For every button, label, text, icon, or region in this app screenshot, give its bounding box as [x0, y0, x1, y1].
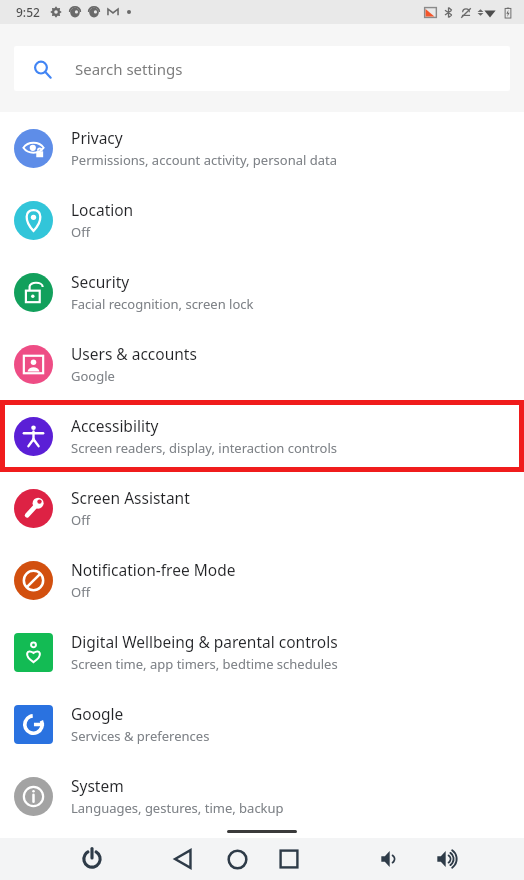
staticText: Off	[71, 511, 91, 529]
button[interactable]: Back	[163, 838, 203, 880]
staticText: Privacy	[71, 127, 123, 148]
button[interactable]: Google	[0, 688, 524, 760]
staticText: Off	[71, 223, 91, 241]
staticText: Security	[71, 271, 130, 292]
staticText: Screen Assistant	[71, 487, 190, 508]
button[interactable]: Home	[217, 838, 257, 880]
button[interactable]: Recent apps	[269, 838, 309, 880]
staticText: Facial recognition, screen lock	[71, 295, 254, 313]
button[interactable]: Search settings	[14, 46, 510, 91]
button[interactable]: Screen Assistant	[0, 472, 524, 544]
staticText: Notification-free Mode	[71, 559, 236, 580]
staticText: Screen readers, display, interaction con…	[71, 439, 338, 457]
button[interactable]: Notification-free Mode	[0, 544, 524, 616]
staticText: Search settings	[75, 59, 183, 79]
staticText: System	[71, 775, 124, 796]
button[interactable]: Security	[0, 256, 524, 328]
staticText: Accessibility	[71, 415, 159, 436]
button[interactable]: Users & accounts	[0, 328, 524, 400]
staticText: Languages, gestures, time, backup	[71, 799, 284, 817]
button[interactable]: Privacy	[0, 112, 524, 184]
staticText: Location	[71, 199, 134, 220]
button[interactable]: Volume down	[371, 838, 411, 880]
staticText: 9:52	[16, 4, 40, 20]
staticText: Google	[71, 367, 115, 385]
staticText: Permissions, account activity, personal …	[71, 151, 337, 169]
staticText: Digital Wellbeing & parental controls	[71, 631, 338, 652]
staticText: Google	[71, 703, 124, 724]
staticText: Screen time, app timers, bedtime schedul…	[71, 655, 338, 673]
button[interactable]: Digital Wellbeing & parental controls	[0, 616, 524, 688]
staticText: Users & accounts	[71, 343, 197, 364]
staticText: Off	[71, 583, 91, 601]
button[interactable]: Power	[60, 838, 123, 880]
button[interactable]: Location	[0, 184, 524, 256]
button[interactable]: Volume up	[427, 838, 467, 880]
staticText: Services & preferences	[71, 727, 210, 745]
button[interactable]: Accessibility	[0, 400, 524, 472]
button[interactable]: System	[0, 760, 524, 832]
